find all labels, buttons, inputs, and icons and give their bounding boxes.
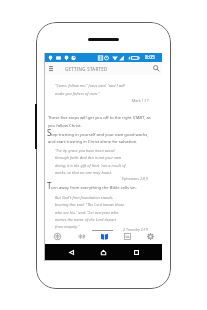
staticText: from iniquity." — [55, 224, 80, 229]
button[interactable]: Read — [93, 232, 116, 244]
staticText: top trusting in yourself and your own go… — [51, 132, 149, 138]
staticText: But God's firm foundation stands, — [55, 195, 114, 200]
staticText: 8:05 — [145, 54, 155, 61]
staticText: urn away from everything the Bible calls… — [51, 185, 137, 191]
button[interactable]: Recent apps — [129, 244, 143, 260]
staticText: These five steps will get you off to the… — [48, 115, 151, 121]
staticText: and start trusting in Christ alone for s… — [48, 139, 138, 145]
button[interactable]: Search — [150, 62, 162, 75]
button[interactable]: Home — [96, 244, 110, 260]
button[interactable]: Open navigation menu — [46, 62, 56, 75]
staticText: works, so that no one may boast. — [55, 170, 113, 175]
staticText: "Come, follow me," Jesus said, "and I wi… — [55, 83, 125, 88]
staticText: who are his," and, "Let everyone who — [55, 210, 119, 215]
staticText: bearing this seal: "The Lord knows those — [55, 202, 125, 207]
staticText: Ephesians 2:8,9 — [122, 176, 149, 181]
staticText: "For by grace you have been saved — [55, 148, 115, 153]
staticText: through faith. And this is not your own — [55, 155, 122, 160]
staticText: Mark 1:17 — [132, 98, 149, 103]
button[interactable]: Back — [64, 244, 78, 260]
button[interactable]: Notes — [116, 232, 139, 244]
staticText: make you fishers of men." — [55, 91, 100, 96]
staticText: GETTING STARTED — [65, 66, 108, 72]
staticText: you follow Christ. — [48, 123, 82, 129]
staticText: names the name of the Lord depart — [55, 217, 117, 222]
staticText: T — [47, 180, 52, 191]
button[interactable]: Web — [45, 232, 69, 244]
button[interactable]: Settings — [139, 232, 162, 244]
staticText: S — [47, 127, 52, 138]
staticText: doing; it is the gift of God, 'not a res… — [55, 163, 126, 168]
staticText: 2 Timothy 2:19 — [123, 227, 148, 232]
button[interactable]: Audio — [69, 232, 93, 244]
